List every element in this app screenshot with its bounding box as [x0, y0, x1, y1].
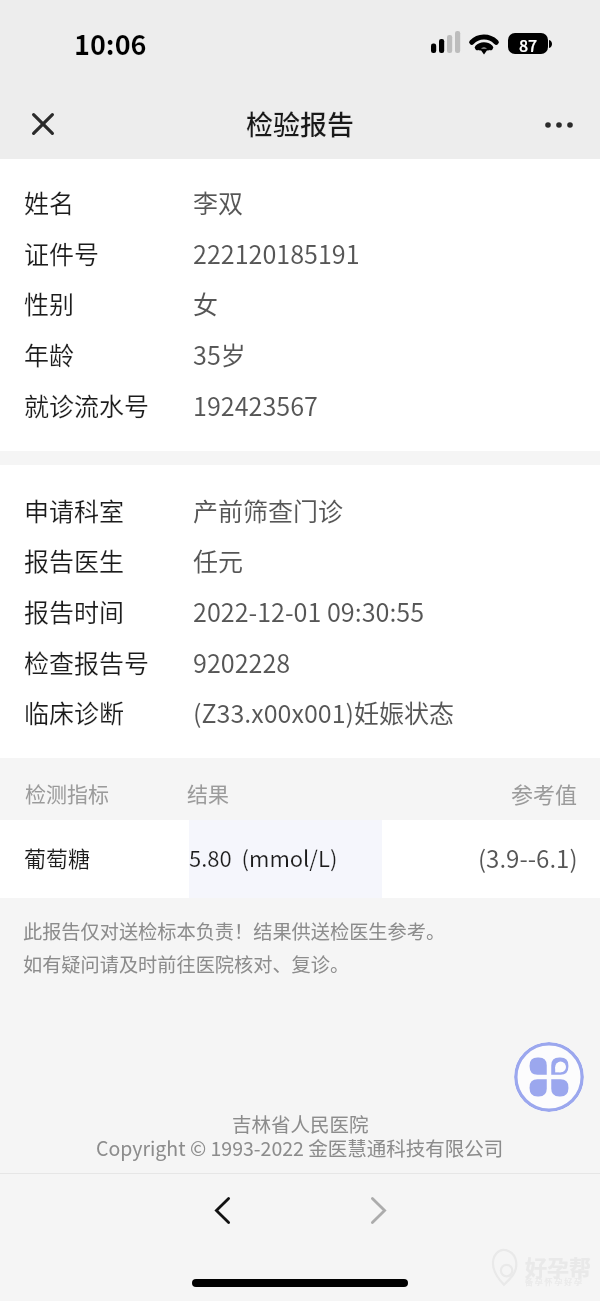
staticText: 就诊流水号	[24, 387, 193, 423]
staticText: 年龄	[24, 336, 193, 372]
staticText: (3.9--6.1)	[478, 840, 578, 875]
staticText: 2022-12-01 09:30:55	[193, 593, 600, 629]
staticText: 性别	[24, 285, 193, 321]
button[interactable]: 姓名	[0, 177, 600, 227]
button[interactable]: Forward	[342, 1174, 414, 1246]
staticText: 5.80 (mmol/L)	[189, 841, 478, 873]
staticText: 证件号	[24, 235, 193, 271]
staticText: 9202228	[193, 644, 600, 680]
staticText: 192423567	[193, 387, 600, 423]
staticText: 报告时间	[24, 593, 193, 629]
staticText: 备 孕 怀 孕 好 孕	[525, 1276, 582, 1288]
staticText: 李双	[193, 184, 600, 220]
staticText: 任元	[193, 542, 600, 578]
button[interactable]: 就诊流水号	[0, 380, 600, 430]
staticText: 申请科室	[24, 492, 193, 528]
button[interactable]: 证件号	[0, 228, 600, 278]
staticText: Copyright © 1993-2022 金医慧通科技有限公司	[96, 1133, 504, 1161]
staticText: 如有疑问请及时前往医院核对、复诊。	[23, 950, 350, 978]
staticText: 报告医生	[24, 542, 193, 578]
staticText: 35岁	[193, 336, 600, 372]
staticText: 检测指标	[25, 778, 109, 808]
button[interactable]: 性别	[0, 278, 600, 328]
staticText: 临床诊断	[24, 694, 193, 730]
button[interactable]: 报告时间	[0, 586, 600, 636]
button[interactable]: Assistant	[514, 1042, 584, 1112]
staticText: 葡萄糖	[24, 841, 189, 873]
staticText: 好孕帮	[525, 1250, 592, 1282]
staticText: 检查报告号	[24, 644, 193, 680]
staticText: 产前筛查门诊	[193, 492, 600, 528]
button[interactable]: Back	[186, 1174, 258, 1246]
button[interactable]: More options	[531, 97, 587, 153]
button[interactable]: 检查报告号	[0, 637, 600, 687]
staticText: 女	[193, 285, 600, 321]
staticText: (Z33.x00x001)妊娠状态	[193, 694, 600, 730]
staticText: 87	[519, 33, 538, 54]
button[interactable]: 年龄	[0, 329, 600, 379]
staticText: 参考值	[511, 777, 578, 809]
button[interactable]: 临床诊断	[0, 687, 600, 737]
button[interactable]: 申请科室	[0, 485, 600, 535]
button[interactable]: 葡萄糖	[0, 818, 600, 896]
button[interactable]: 报告医生	[0, 535, 600, 585]
staticText: 吉林省人民医院	[232, 1109, 369, 1137]
staticText: 检验报告	[246, 104, 354, 143]
staticText: 10:06	[74, 24, 147, 63]
staticText: 姓名	[24, 184, 193, 220]
staticText: 222120185191	[193, 235, 600, 271]
staticText: 此报告仅对送检标本负责！结果供送检医生参考。	[23, 917, 446, 945]
button[interactable]: Close	[15, 96, 71, 152]
staticText: 结果	[187, 778, 229, 808]
